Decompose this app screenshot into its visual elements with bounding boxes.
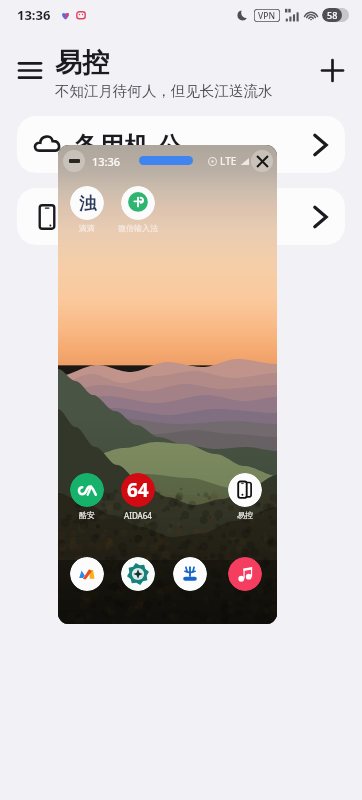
button[interactable]: 小米平板 bbox=[17, 188, 345, 245]
button[interactable]: App bbox=[228, 557, 262, 591]
button[interactable]: 滴滴 bbox=[70, 186, 104, 220]
button[interactable]: App bbox=[121, 557, 155, 591]
staticText: VPN bbox=[258, 10, 276, 22]
staticText: 易控 bbox=[55, 46, 109, 80]
staticText: 备用机-公 bbox=[74, 128, 183, 162]
button[interactable]: Add bbox=[315, 53, 349, 87]
staticText: LTE bbox=[220, 154, 237, 168]
staticText: 13:36 bbox=[17, 6, 51, 24]
staticText: 13:36 bbox=[92, 154, 121, 169]
button[interactable]: 酷安 bbox=[70, 473, 104, 507]
button[interactable]: 易控 bbox=[228, 473, 262, 507]
staticText: 酷安 bbox=[79, 510, 95, 520]
staticText: 微信输入法 bbox=[118, 223, 158, 233]
button[interactable]: Menu bbox=[13, 53, 47, 87]
staticText: 58 bbox=[327, 9, 338, 21]
button[interactable]: 微信输入法 bbox=[121, 186, 155, 220]
staticText: 64 bbox=[127, 477, 149, 503]
button[interactable]: App bbox=[70, 557, 104, 591]
button[interactable]: 备用机-公 bbox=[17, 116, 345, 173]
staticText: 滴滴 bbox=[79, 223, 95, 233]
staticText: AIDA64 bbox=[124, 510, 152, 521]
staticText: 小米平板 bbox=[74, 201, 174, 232]
button[interactable]: AIDA64 bbox=[121, 473, 155, 507]
button[interactable]: App bbox=[173, 557, 207, 591]
staticText: 浊 bbox=[79, 193, 96, 214]
button[interactable]: Close bbox=[251, 150, 273, 172]
button[interactable]: Minimize bbox=[63, 150, 85, 172]
staticText: 不知江月待何人，但见长江送流水 bbox=[55, 82, 273, 100]
staticText: 易控 bbox=[237, 510, 253, 520]
